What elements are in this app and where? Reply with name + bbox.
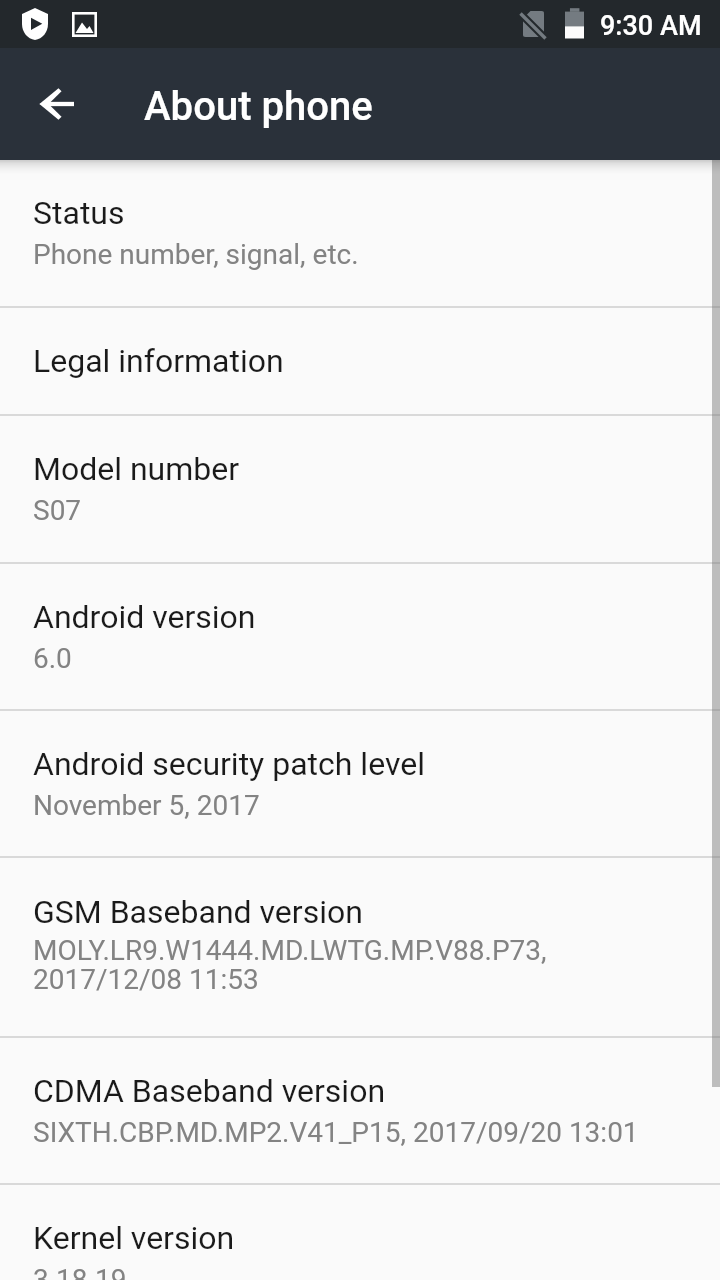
staticText: Status bbox=[33, 195, 125, 232]
button[interactable]: CDMA Baseband version bbox=[0, 1038, 720, 1183]
button[interactable]: Kernel version bbox=[0, 1185, 720, 1280]
staticText: CDMA Baseband version bbox=[33, 1073, 386, 1110]
button[interactable]: Model number bbox=[0, 416, 720, 562]
button[interactable]: GSM Baseband version bbox=[0, 858, 720, 1036]
staticText: 9:30 AM bbox=[600, 10, 702, 42]
staticText: SIXTH.CBP.MD.MP2.V41_P15, 2017/09/20 13:… bbox=[33, 1116, 639, 1149]
staticText: 6.0 bbox=[33, 642, 72, 675]
staticText: GSM Baseband version bbox=[33, 894, 363, 931]
staticText: S07 bbox=[33, 494, 82, 527]
staticText: Kernel version bbox=[33, 1220, 235, 1257]
staticText: Model number bbox=[33, 451, 240, 488]
staticText: About phone bbox=[144, 83, 373, 130]
button[interactable]: Navigate up bbox=[10, 56, 106, 152]
staticText: Legal information bbox=[33, 343, 284, 380]
staticText: MOLY.LR9.W1444.MD.LWTG.MP.V88.P73, 2017/… bbox=[33, 937, 547, 995]
button[interactable]: Android security patch level bbox=[0, 711, 720, 856]
staticText: Android version bbox=[33, 599, 256, 636]
button[interactable]: Android version bbox=[0, 564, 720, 709]
staticText: Phone number, signal, etc. bbox=[33, 238, 359, 271]
staticText: 3.18.19 bbox=[33, 1263, 127, 1280]
staticText: November 5, 2017 bbox=[33, 789, 260, 822]
staticText: Android security patch level bbox=[33, 746, 425, 783]
button[interactable]: Status bbox=[0, 160, 720, 306]
button[interactable]: Legal information bbox=[0, 308, 720, 414]
